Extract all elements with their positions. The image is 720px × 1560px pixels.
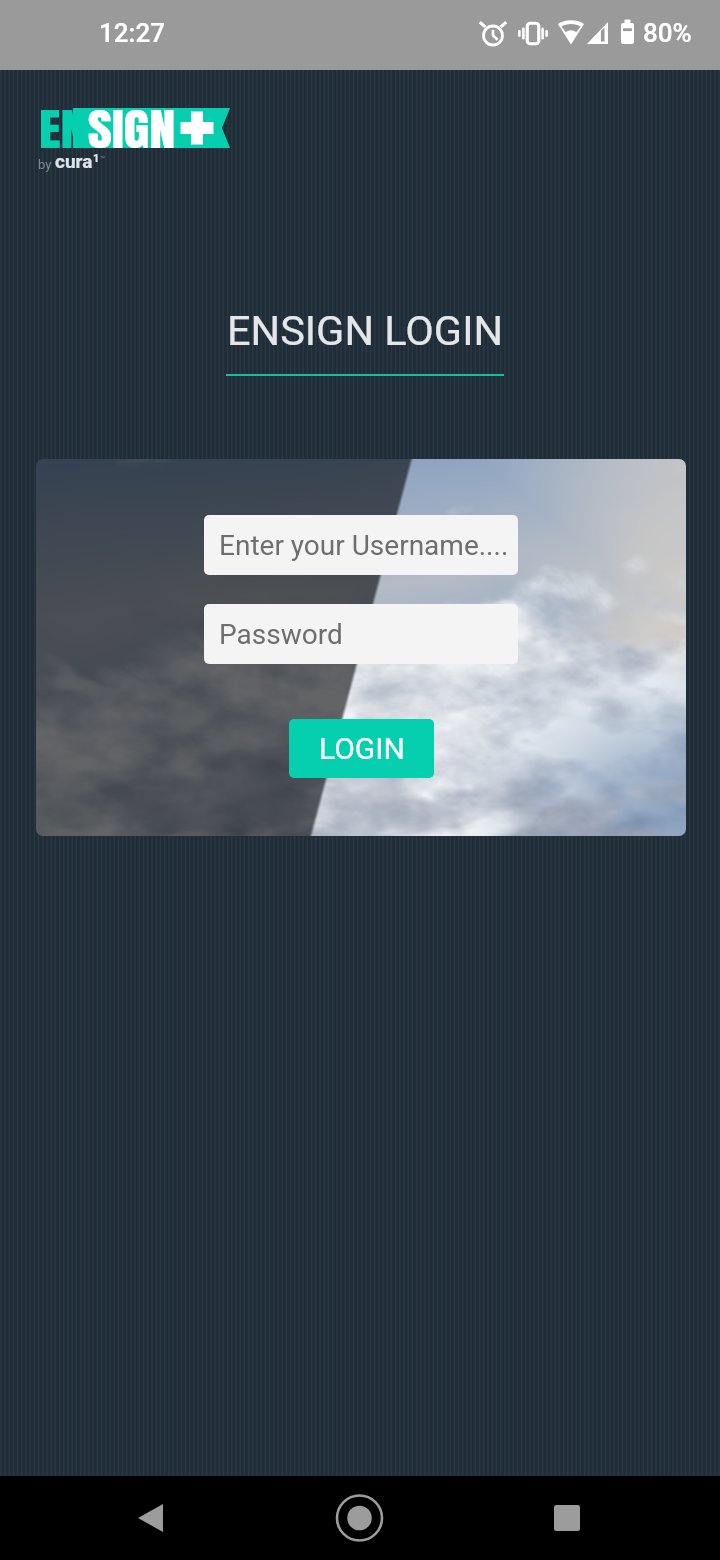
staticText: 1 bbox=[93, 152, 100, 165]
staticText: Password bbox=[219, 618, 343, 651]
button[interactable]: Password bbox=[204, 604, 518, 664]
staticText: SIGN bbox=[88, 96, 176, 162]
staticText: cura bbox=[55, 150, 93, 172]
button[interactable]: Recent apps bbox=[535, 1494, 599, 1558]
staticText: LOGIN bbox=[319, 731, 405, 766]
button[interactable]: LOGIN bbox=[289, 719, 434, 778]
staticText: ™ bbox=[100, 155, 106, 164]
staticText: ENSIGN LOGIN bbox=[227, 306, 504, 355]
button[interactable]: Back bbox=[120, 1494, 184, 1558]
button[interactable]: Home bbox=[328, 1494, 392, 1558]
staticText: Enter your Username.... bbox=[219, 529, 509, 562]
staticText: EN bbox=[39, 96, 88, 162]
button[interactable]: Enter your Username.... bbox=[204, 515, 518, 575]
staticText: by bbox=[38, 157, 55, 172]
staticText: 12:27 bbox=[99, 18, 165, 48]
staticText: 80% bbox=[643, 18, 692, 48]
